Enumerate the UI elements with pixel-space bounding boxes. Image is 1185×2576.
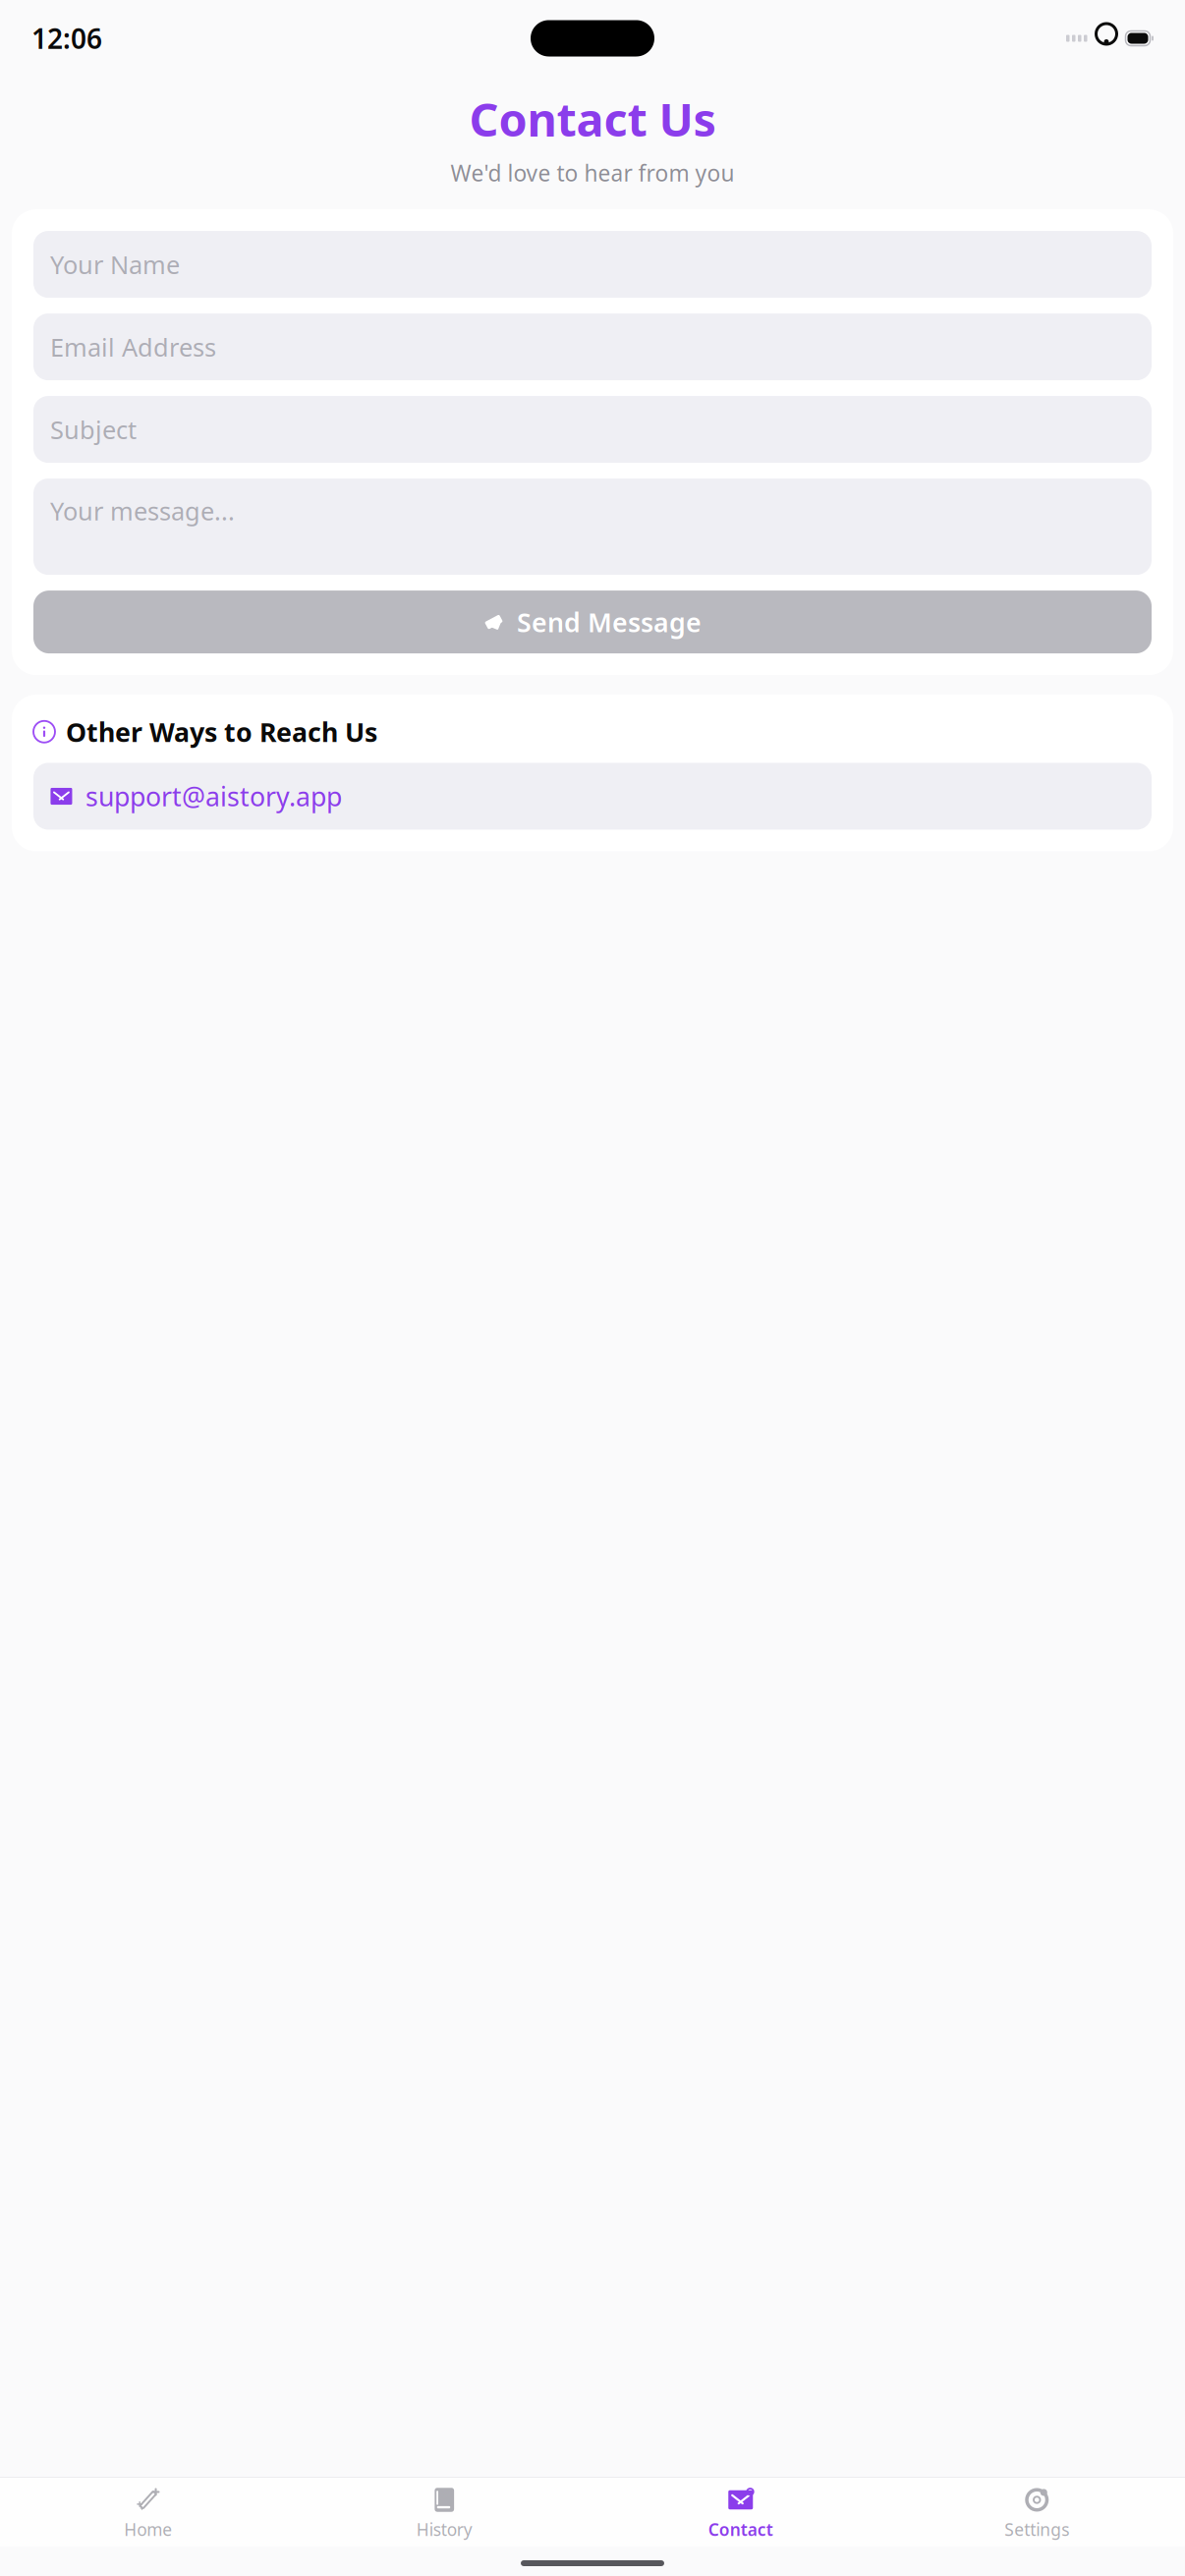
button[interactable]: Send Message — [33, 591, 1152, 653]
button[interactable]: support@aistory.app — [33, 763, 1152, 830]
button[interactable]: Settings — [889, 2478, 1185, 2541]
staticText: Send Message — [517, 605, 702, 639]
button[interactable]: Email Address — [33, 314, 1152, 380]
staticText: Your message... — [50, 494, 235, 527]
staticText: History — [416, 2518, 472, 2541]
button[interactable]: Your Name — [33, 231, 1152, 298]
staticText: Your Name — [50, 248, 180, 281]
staticText: Email Address — [50, 330, 216, 363]
button[interactable]: Home — [0, 2478, 296, 2541]
staticText: Home — [124, 2518, 172, 2541]
staticText: support@aistory.app — [85, 779, 342, 814]
staticText: 12:06 — [31, 20, 102, 57]
staticText: Settings — [1004, 2518, 1069, 2541]
staticText: Subject — [50, 413, 137, 446]
staticText: Contact — [708, 2518, 773, 2541]
button[interactable]: Contact — [592, 2478, 889, 2541]
button[interactable]: Subject — [33, 396, 1152, 463]
staticText: Contact Us — [469, 88, 716, 149]
staticText: Other Ways to Reach Us — [66, 714, 377, 749]
staticText: We'd love to hear from you — [451, 158, 734, 188]
button[interactable]: Your message... — [33, 479, 1152, 575]
button[interactable]: History — [296, 2478, 592, 2541]
